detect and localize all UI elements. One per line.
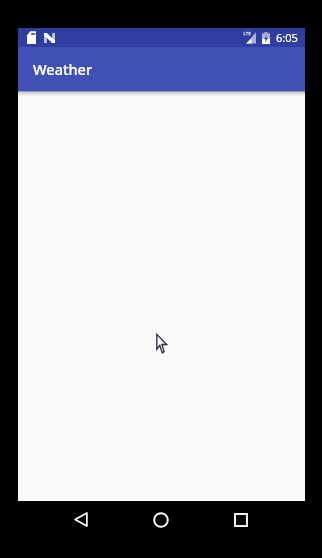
button[interactable]: Home	[121, 501, 201, 538]
button[interactable]: Back	[41, 501, 121, 538]
staticText: 6:05	[276, 30, 298, 45]
staticText: Weather	[33, 59, 93, 79]
button[interactable]: Recent apps	[201, 501, 281, 538]
button[interactable]: Weather app bar	[18, 47, 305, 91]
